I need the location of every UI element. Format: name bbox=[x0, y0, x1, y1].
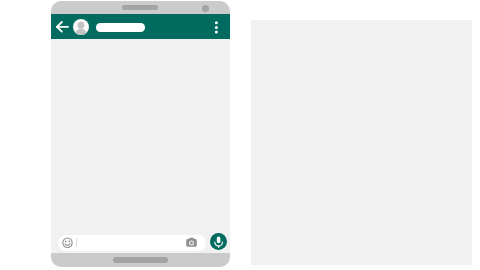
button[interactable] bbox=[96, 23, 145, 32]
button[interactable] bbox=[58, 235, 206, 251]
button[interactable] bbox=[54, 18, 71, 35]
button[interactable] bbox=[73, 19, 89, 35]
button[interactable] bbox=[210, 233, 227, 250]
button[interactable] bbox=[210, 18, 224, 34]
